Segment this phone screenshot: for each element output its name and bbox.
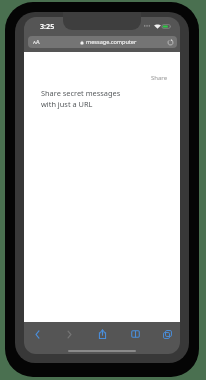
button[interactable]: Bookmarks (125, 324, 145, 344)
staticText: 3:25 (40, 21, 55, 31)
button[interactable]: Forward (59, 324, 79, 344)
staticText: message.computer (86, 38, 137, 46)
staticText: Share secret messages with just a URL (41, 88, 121, 109)
button[interactable]: ᴀA (28, 36, 177, 48)
staticText: ᴀA (33, 38, 40, 46)
button[interactable]: Share (151, 74, 168, 82)
button[interactable]: Back (27, 324, 47, 344)
button[interactable]: Share (92, 324, 112, 344)
button[interactable]: Tabs (157, 324, 177, 344)
other: Reload (167, 39, 174, 46)
